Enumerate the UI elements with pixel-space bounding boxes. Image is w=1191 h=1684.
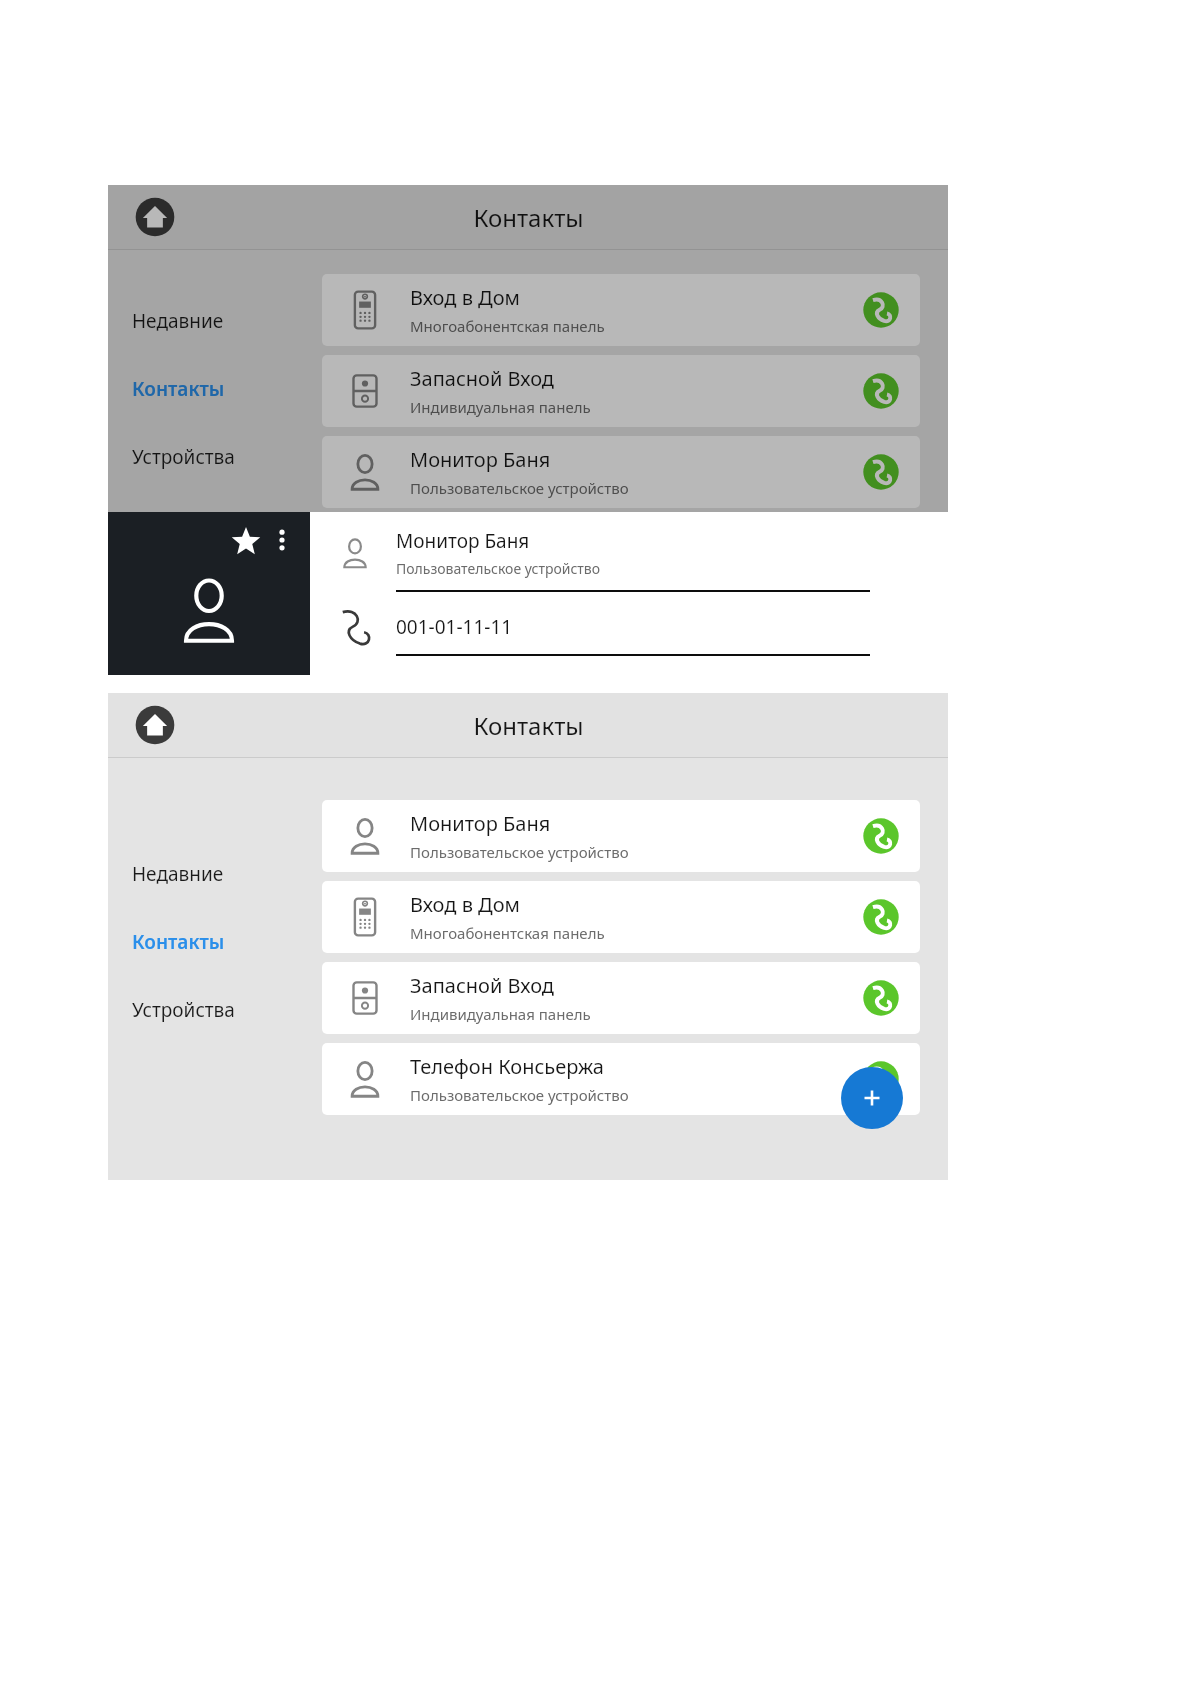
button[interactable]: Контакты xyxy=(108,923,322,961)
button[interactable]: Монитор Баня xyxy=(322,800,920,872)
staticText: Контакты xyxy=(473,201,584,234)
button[interactable]: Call Монитор Баня xyxy=(858,449,904,495)
staticText: Контакты xyxy=(132,929,225,955)
button[interactable]: Call Запасной Вход xyxy=(858,368,904,414)
staticText: 001-01-11-11 xyxy=(396,614,513,640)
button[interactable]: Favorite xyxy=(230,526,262,558)
staticText: Устройства xyxy=(132,444,235,470)
staticText: Устройства xyxy=(132,997,235,1023)
button[interactable]: Телефон Консьержа xyxy=(322,1043,920,1115)
staticText: Вход в Дом xyxy=(410,284,520,311)
button[interactable]: Монитор Баня xyxy=(322,436,920,508)
button[interactable]: Контакты xyxy=(108,370,322,408)
staticText: Запасной Вход xyxy=(410,365,554,392)
staticText: Телефон Консьержа xyxy=(410,1053,604,1080)
button[interactable]: Call Вход в Дом xyxy=(858,894,904,940)
staticText: Многоабонентская панель xyxy=(410,316,605,336)
button[interactable]: Вход в Дом xyxy=(322,274,920,346)
staticText: Индивидуальная панель xyxy=(410,1004,591,1024)
button[interactable]: Запасной Вход xyxy=(322,962,920,1034)
staticText: Недавние xyxy=(132,861,224,887)
staticText: Монитор Баня xyxy=(410,810,551,837)
staticText: Пользовательское устройство xyxy=(410,842,629,862)
button[interactable]: More options xyxy=(268,526,296,554)
staticText: Пользовательское устройство xyxy=(396,559,601,578)
button[interactable]: Call Телефон Консьержа xyxy=(858,1056,904,1102)
staticText: Многоабонентская панель xyxy=(410,923,605,943)
staticText: Контакты xyxy=(473,709,584,742)
staticText: Контакты xyxy=(132,376,225,402)
button[interactable]: Запасной Вход xyxy=(322,355,920,427)
staticText: Пользовательское устройство xyxy=(410,478,629,498)
button[interactable]: Недавние xyxy=(108,855,322,893)
staticText: Индивидуальная панель xyxy=(410,397,591,417)
button[interactable]: Недавние xyxy=(108,302,322,340)
button[interactable]: Call Вход в Дом xyxy=(858,287,904,333)
staticText: Запасной Вход xyxy=(410,972,554,999)
button[interactable]: Home xyxy=(134,704,176,746)
button[interactable]: Home xyxy=(134,196,176,238)
button[interactable]: Add contact xyxy=(841,1067,903,1129)
button[interactable]: Call Запасной Вход xyxy=(858,975,904,1021)
staticText: Вход в Дом xyxy=(410,891,520,918)
button[interactable]: Вход в Дом xyxy=(322,881,920,953)
staticText: Монитор Баня xyxy=(396,528,530,554)
staticText: Монитор Баня xyxy=(410,446,551,473)
staticText: Недавние xyxy=(132,308,224,334)
button[interactable]: Устройства xyxy=(108,991,322,1029)
button[interactable]: Устройства xyxy=(108,438,322,476)
button[interactable]: Call Монитор Баня xyxy=(858,813,904,859)
staticText: Пользовательское устройство xyxy=(410,1085,629,1105)
